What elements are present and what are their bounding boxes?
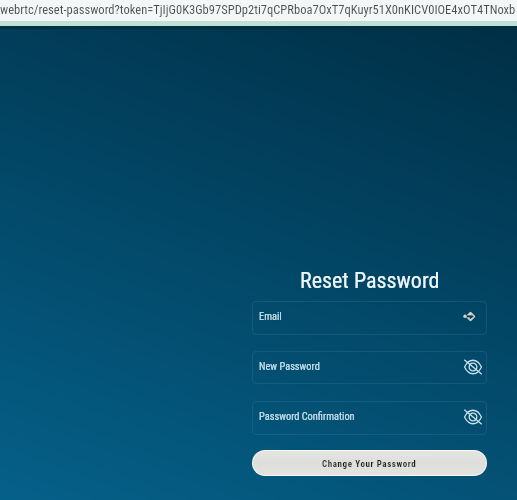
staticText: Email [259, 310, 461, 322]
button[interactable]: Submit email [460, 306, 480, 326]
staticText: webrtc/reset-password?token=TjIjG0K3Gb97… [0, 2, 516, 17]
staticText: Reset Password [300, 268, 440, 294]
button[interactable]: Toggle password visibility [463, 407, 483, 427]
staticText: Change Your Password [322, 459, 417, 470]
staticText: New Password [259, 360, 461, 372]
button[interactable]: Email [252, 301, 487, 335]
button[interactable]: Password Confirmation [252, 401, 487, 435]
button[interactable]: New Password [252, 351, 487, 384]
button[interactable]: Change Your Password [253, 451, 486, 475]
button[interactable]: Toggle password visibility [463, 357, 483, 377]
staticText: Password Confirmation [259, 410, 461, 422]
